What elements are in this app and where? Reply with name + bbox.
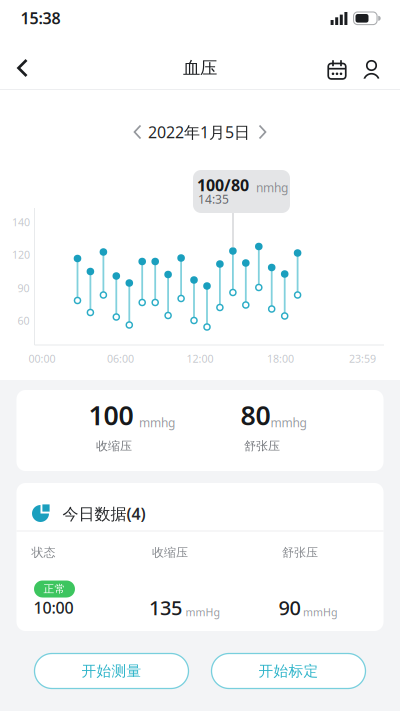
button[interactable]: Back [4, 48, 40, 88]
staticText: 90 [278, 594, 300, 621]
staticText: 状态 [31, 545, 55, 560]
button[interactable]: Calendar [320, 48, 354, 88]
staticText: 18:00 [267, 351, 294, 366]
staticText: 收缩压 [96, 439, 132, 453]
staticText: 收缩压 [152, 545, 188, 560]
staticText: mmHg [185, 605, 220, 619]
staticText: 23:59 [349, 351, 376, 366]
staticText: 舒张压 [244, 439, 280, 453]
staticText: 100/80 [197, 174, 249, 196]
staticText: 10:00 [33, 597, 73, 618]
staticText: mmHg [303, 605, 338, 619]
button[interactable]: Previous day [132, 122, 143, 141]
staticText: 开始标定 [258, 662, 318, 680]
staticText: 135 [149, 594, 182, 621]
staticText: 血压 [183, 57, 217, 79]
staticText: nmhg [256, 179, 288, 195]
button[interactable]: 开始测量 [34, 653, 188, 688]
staticText: 开始测量 [81, 662, 141, 680]
staticText: 120 [12, 247, 30, 262]
staticText: mmhg [270, 414, 306, 430]
staticText: 12:00 [186, 351, 213, 366]
button[interactable]: 开始标定 [211, 653, 365, 688]
staticText: 14:35 [198, 191, 229, 207]
staticText: 今日数据(4) [62, 503, 145, 524]
button[interactable]: 2022年1月5日 [148, 121, 250, 143]
button[interactable]: Profile [354, 48, 388, 88]
staticText: 60 [17, 313, 29, 328]
staticText: 100 [88, 397, 133, 433]
staticText: 舒张压 [282, 545, 318, 560]
button[interactable]: Next day [257, 122, 268, 141]
staticText: 140 [12, 215, 30, 229]
staticText: 正常 [43, 582, 65, 595]
staticText: 06:00 [107, 351, 134, 366]
staticText: 80 [240, 397, 270, 433]
staticText: 2022年1月5日 [148, 121, 250, 143]
staticText: 15:38 [20, 7, 60, 29]
staticText: mmhg [139, 414, 175, 430]
staticText: 90 [17, 281, 29, 295]
staticText: 00:00 [28, 351, 55, 366]
